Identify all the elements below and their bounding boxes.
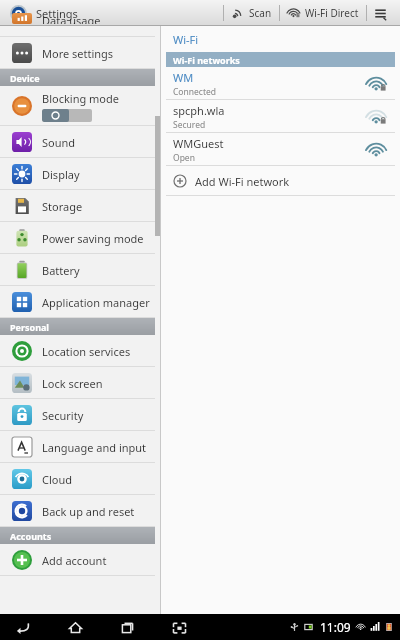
button[interactable]: Display [0, 158, 155, 190]
button[interactable]: Back up and reset [0, 495, 155, 527]
staticText: Connected [173, 86, 216, 98]
staticText: Personal [10, 321, 50, 333]
staticText: Storage [42, 199, 83, 214]
staticText: Location services [42, 344, 131, 359]
button[interactable]: More options [367, 2, 394, 25]
staticText: Power saving mode [42, 231, 144, 246]
button[interactable]: Application manager [0, 286, 155, 318]
staticText: Security [42, 408, 84, 423]
button[interactable]: WM [161, 67, 400, 100]
button[interactable]: Location services [0, 335, 155, 367]
button[interactable]: Add account [0, 544, 155, 576]
button[interactable]: Scan [224, 3, 279, 23]
button[interactable]: Add Wi-Fi network [161, 166, 400, 196]
button[interactable]: Lock screen [0, 367, 155, 399]
button[interactable]: Settings [6, 3, 82, 24]
staticText: Settings [36, 6, 78, 21]
staticText: WMGuest [173, 136, 224, 151]
button[interactable]: Blocking mode [0, 86, 155, 126]
button[interactable]: Power saving mode [0, 222, 155, 254]
staticText: Accounts [10, 530, 52, 542]
button[interactable]: Cloud [0, 463, 155, 495]
button[interactable]: Battery [0, 254, 155, 286]
button[interactable]: Screenshot [166, 616, 192, 638]
staticText: More settings [42, 46, 114, 61]
staticText: Secured [173, 119, 206, 131]
staticText: WM [173, 70, 194, 85]
staticText: Display [42, 167, 80, 182]
staticText: Wi-Fi networks [173, 54, 240, 66]
staticText: Device [10, 72, 40, 84]
button[interactable]: Blocking mode toggle [42, 109, 92, 122]
staticText: Lock screen [42, 376, 103, 391]
button[interactable]: Sound [0, 126, 155, 158]
button[interactable]: Wi-Fi [161, 26, 400, 52]
staticText: 11:09 [320, 619, 351, 635]
staticText: Add account [42, 553, 107, 568]
staticText: Cloud [42, 472, 73, 487]
staticText: Wi-Fi Direct [305, 6, 359, 20]
button[interactable]: Data usage [0, 26, 155, 37]
staticText: Data usage [42, 13, 101, 24]
button[interactable]: Language and input [0, 431, 155, 463]
button[interactable]: Home [62, 616, 88, 638]
button[interactable]: Recents [114, 616, 140, 638]
button[interactable]: More settings [0, 37, 155, 69]
button[interactable]: Security [0, 399, 155, 431]
staticText: Blocking mode [42, 91, 119, 106]
staticText: Open [173, 152, 195, 164]
staticText: Add Wi-Fi network [195, 174, 290, 189]
button[interactable]: WMGuest [161, 133, 400, 166]
staticText: Wi-Fi [173, 32, 199, 47]
staticText: spcph.wla [173, 103, 225, 118]
staticText: Scan [249, 6, 272, 20]
button[interactable]: Back [10, 616, 36, 638]
staticText: Back up and reset [42, 504, 135, 519]
staticText: Language and input [42, 440, 147, 455]
staticText: Application manager [42, 295, 150, 310]
staticText: Battery [42, 263, 80, 278]
button[interactable]: Wi-Fi Direct [280, 3, 366, 23]
button[interactable]: Storage [0, 190, 155, 222]
button[interactable]: spcph.wla [161, 100, 400, 133]
staticText: Sound [42, 135, 76, 150]
